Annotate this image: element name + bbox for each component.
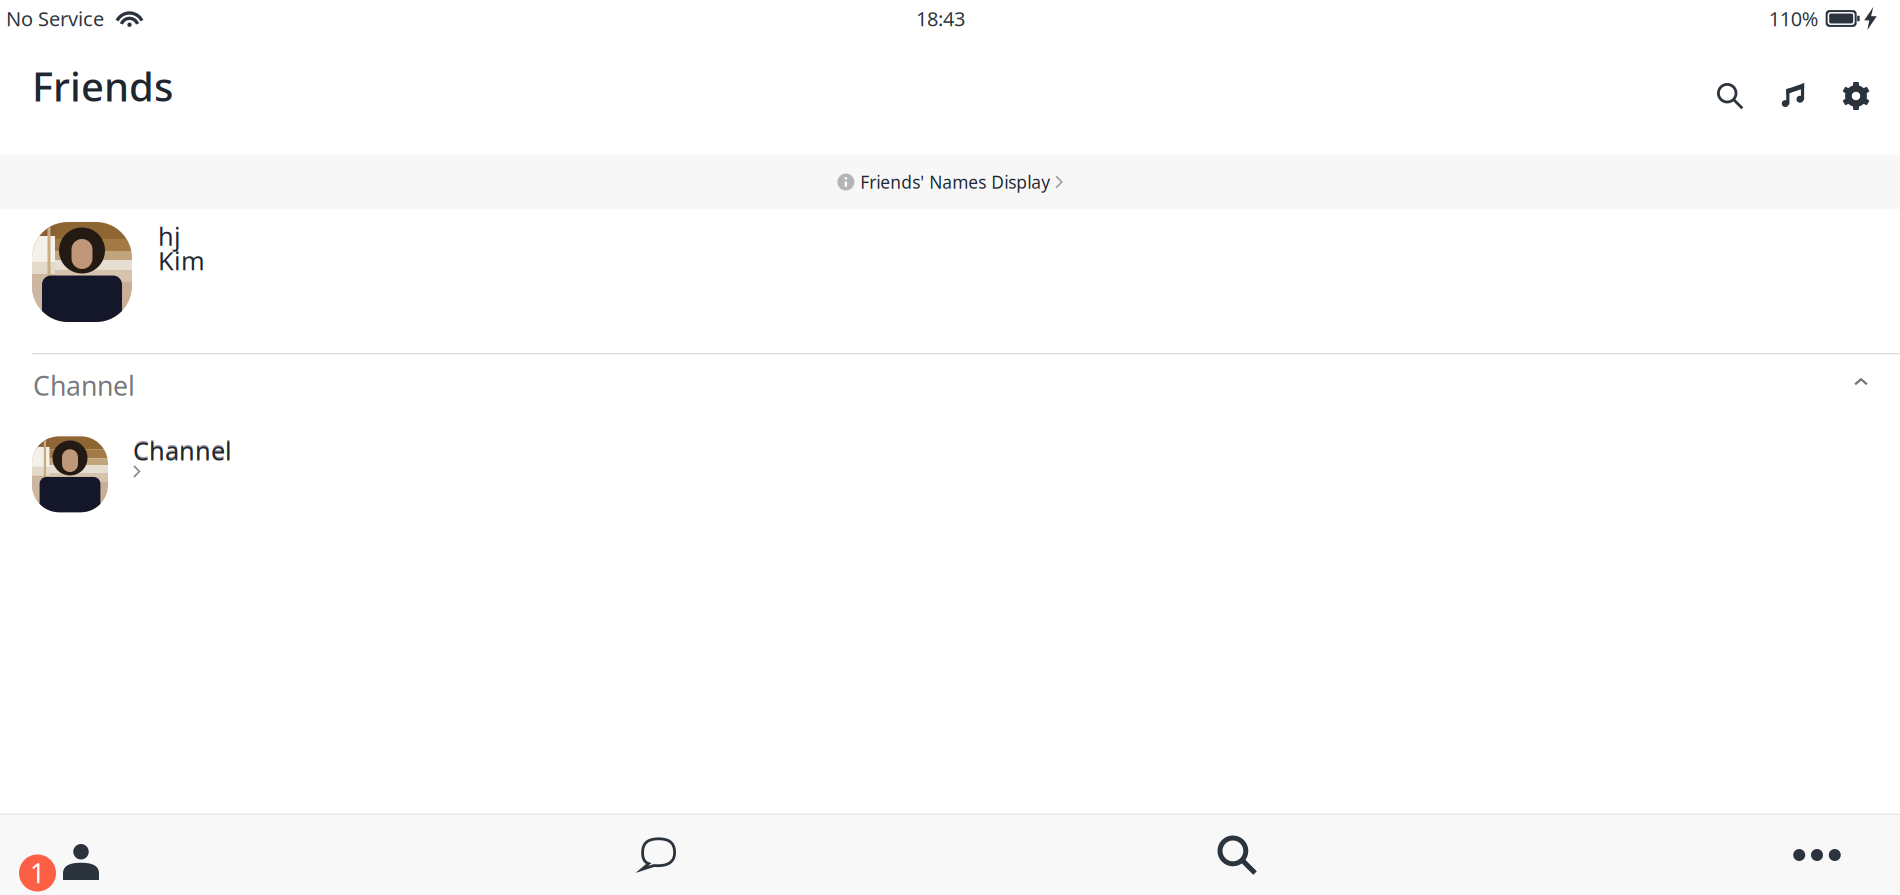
staticText: Channel: [133, 434, 232, 467]
button[interactable]: Friends' Names Display: [0, 155, 1900, 209]
staticText: Channel: [133, 432, 232, 466]
staticText: 1: [30, 855, 45, 891]
staticText: Channel: [33, 368, 135, 403]
staticText: hj: [158, 219, 181, 253]
staticText: Friends: [32, 59, 173, 112]
button[interactable]: Friends: [0, 815, 160, 895]
button[interactable]: Settings: [1825, 63, 1887, 129]
staticText: Kim: [158, 244, 205, 277]
button[interactable]: More: [1757, 815, 1877, 895]
staticText: No Service: [6, 5, 104, 32]
button[interactable]: Channel: [0, 354, 1900, 416]
button[interactable]: hj: [0, 209, 1900, 353]
button[interactable]: Search: [1698, 63, 1762, 129]
staticText: 110%: [1769, 5, 1819, 32]
button[interactable]: Chats: [597, 815, 717, 895]
button[interactable]: Search: [1177, 815, 1297, 895]
button[interactable]: Music: [1762, 63, 1825, 129]
button[interactable]: Channel: [0, 416, 1900, 514]
staticText: 18:43: [916, 5, 965, 32]
staticText: Friends' Names Display: [860, 170, 1050, 193]
